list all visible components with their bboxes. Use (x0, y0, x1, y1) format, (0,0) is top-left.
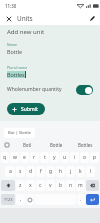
staticText: Plural name (7, 65, 28, 70)
button[interactable]: c (36, 180, 45, 191)
staticText: 11:30 (5, 3, 17, 9)
button[interactable]: Shift (1, 180, 15, 191)
button[interactable]: n (66, 180, 75, 191)
button[interactable]: Emoji (26, 194, 34, 205)
button[interactable]: r (30, 152, 39, 163)
staticText: p (93, 154, 97, 161)
staticText: , (20, 196, 22, 203)
staticText: f (40, 168, 42, 175)
staticText: g (49, 168, 53, 175)
button[interactable]: l (86, 166, 95, 177)
staticText: c (39, 182, 42, 189)
button[interactable]: Close (0, 12, 17, 25)
staticText: r (33, 154, 36, 161)
button[interactable]: g (46, 166, 55, 177)
button[interactable]: , (16, 194, 25, 205)
button[interactable]: z (16, 180, 25, 191)
button[interactable]: Bot | Bottle (4, 128, 35, 138)
staticText: l (90, 168, 92, 175)
button[interactable]: Enter (86, 194, 99, 205)
button[interactable]: Bottles (71, 140, 100, 149)
staticText: o (83, 154, 87, 161)
staticText: n (69, 182, 73, 189)
staticText: i (74, 154, 76, 161)
button[interactable]: u (60, 152, 69, 163)
button[interactable]: Backspace (86, 180, 99, 191)
staticText: x (29, 182, 32, 189)
staticText: Bottle (7, 48, 23, 55)
staticText: a (9, 168, 12, 175)
button[interactable]: p (90, 152, 99, 163)
button[interactable]: ?123 (1, 194, 15, 205)
button[interactable]: o (80, 152, 89, 163)
button[interactable]: m (76, 180, 85, 191)
staticText: Units (17, 14, 33, 23)
staticText: Add new unit (7, 28, 45, 36)
staticText: s (19, 168, 22, 175)
button[interactable]: k (76, 166, 85, 177)
button[interactable]: f (36, 166, 45, 177)
staticText: j (70, 168, 72, 175)
button[interactable]: i (70, 152, 79, 163)
staticText: Bottle (50, 142, 63, 148)
button[interactable]: x (26, 180, 35, 191)
staticText: z (19, 182, 22, 189)
staticText: Botl (23, 142, 32, 148)
button[interactable]: j (66, 166, 75, 177)
button[interactable]: Botl (13, 140, 42, 149)
button[interactable]: y (50, 152, 59, 163)
button[interactable]: e (20, 152, 29, 163)
staticText: h (59, 168, 63, 175)
button[interactable]: . (77, 194, 85, 205)
button[interactable]: t (40, 152, 49, 163)
staticText: Name (7, 42, 18, 47)
staticText: w (13, 154, 17, 161)
staticText: ?123 (4, 197, 13, 202)
button[interactable]: w (10, 152, 19, 163)
staticText: Bottles (78, 142, 93, 148)
staticText: y (53, 154, 56, 161)
button[interactable]: Submit (7, 103, 45, 115)
button[interactable]: Bottle (42, 140, 71, 149)
staticText: d (29, 168, 33, 175)
staticText: v (49, 182, 52, 189)
staticText: Bot | Bottle (8, 130, 31, 136)
button[interactable]: v (46, 180, 55, 191)
button[interactable]: Clipboard (0, 140, 13, 149)
button[interactable]: q (1, 152, 9, 163)
button[interactable]: a (5, 166, 15, 177)
staticText: Bottles (7, 71, 25, 78)
staticText: u (63, 154, 67, 161)
button[interactable]: b (56, 180, 65, 191)
staticText: Wholenumber quantity (7, 86, 62, 93)
staticText: q (3, 154, 7, 161)
staticText: . (80, 196, 82, 203)
staticText: k (79, 168, 82, 175)
button[interactable]: d (26, 166, 35, 177)
staticText: e (23, 154, 26, 161)
staticText: b (59, 182, 63, 189)
staticText: m (78, 182, 83, 189)
button[interactable]: h (56, 166, 65, 177)
button[interactable]: s (16, 166, 25, 177)
staticText: Submit (21, 106, 38, 113)
staticText: t (44, 154, 46, 161)
button[interactable]: Edit (84, 12, 100, 25)
button[interactable]: Wholenumber quantity (7, 84, 93, 95)
